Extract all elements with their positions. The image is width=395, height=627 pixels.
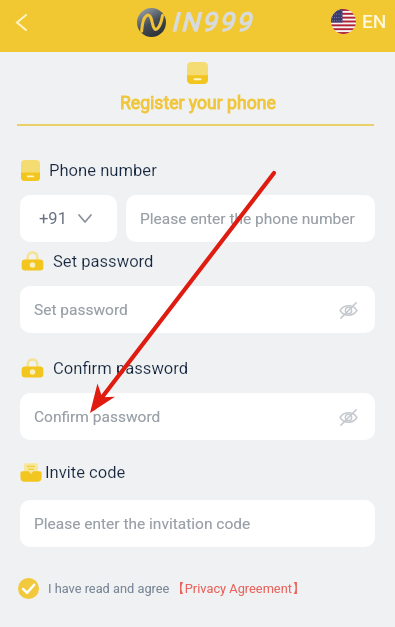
button[interactable]: Confirm password bbox=[20, 393, 375, 440]
button[interactable]: Please enter the invitation code bbox=[20, 500, 375, 547]
staticText: I have read and agree bbox=[48, 581, 170, 596]
staticText: +91 bbox=[39, 209, 67, 228]
button[interactable]: Please enter the phone number bbox=[126, 195, 375, 242]
button[interactable]: Toggle password visibility bbox=[335, 297, 361, 323]
staticText: 【Privacy Agreement】 bbox=[172, 581, 305, 597]
staticText: Phone number bbox=[49, 161, 157, 180]
button[interactable]: Agree checkbox bbox=[18, 578, 39, 599]
staticText: Set password bbox=[53, 252, 154, 271]
button[interactable]: +91 bbox=[20, 195, 117, 242]
button[interactable]: Set password bbox=[20, 286, 375, 333]
staticText: EN bbox=[362, 10, 387, 32]
staticText: Confirm password bbox=[53, 359, 189, 378]
button[interactable]: Back bbox=[6, 7, 36, 37]
button[interactable]: EN bbox=[331, 8, 387, 33]
button[interactable]: Toggle password visibility bbox=[335, 404, 361, 430]
staticText: Please enter the phone number bbox=[140, 210, 355, 228]
staticText: Register your phone bbox=[120, 93, 276, 114]
button[interactable]: 【Privacy Agreement】 bbox=[172, 581, 305, 597]
staticText: Confirm password bbox=[34, 408, 161, 426]
staticText: IN999 bbox=[171, 7, 254, 37]
staticText: Invite code bbox=[45, 463, 126, 482]
staticText: Please enter the invitation code bbox=[34, 515, 251, 533]
staticText: Set password bbox=[34, 301, 128, 319]
